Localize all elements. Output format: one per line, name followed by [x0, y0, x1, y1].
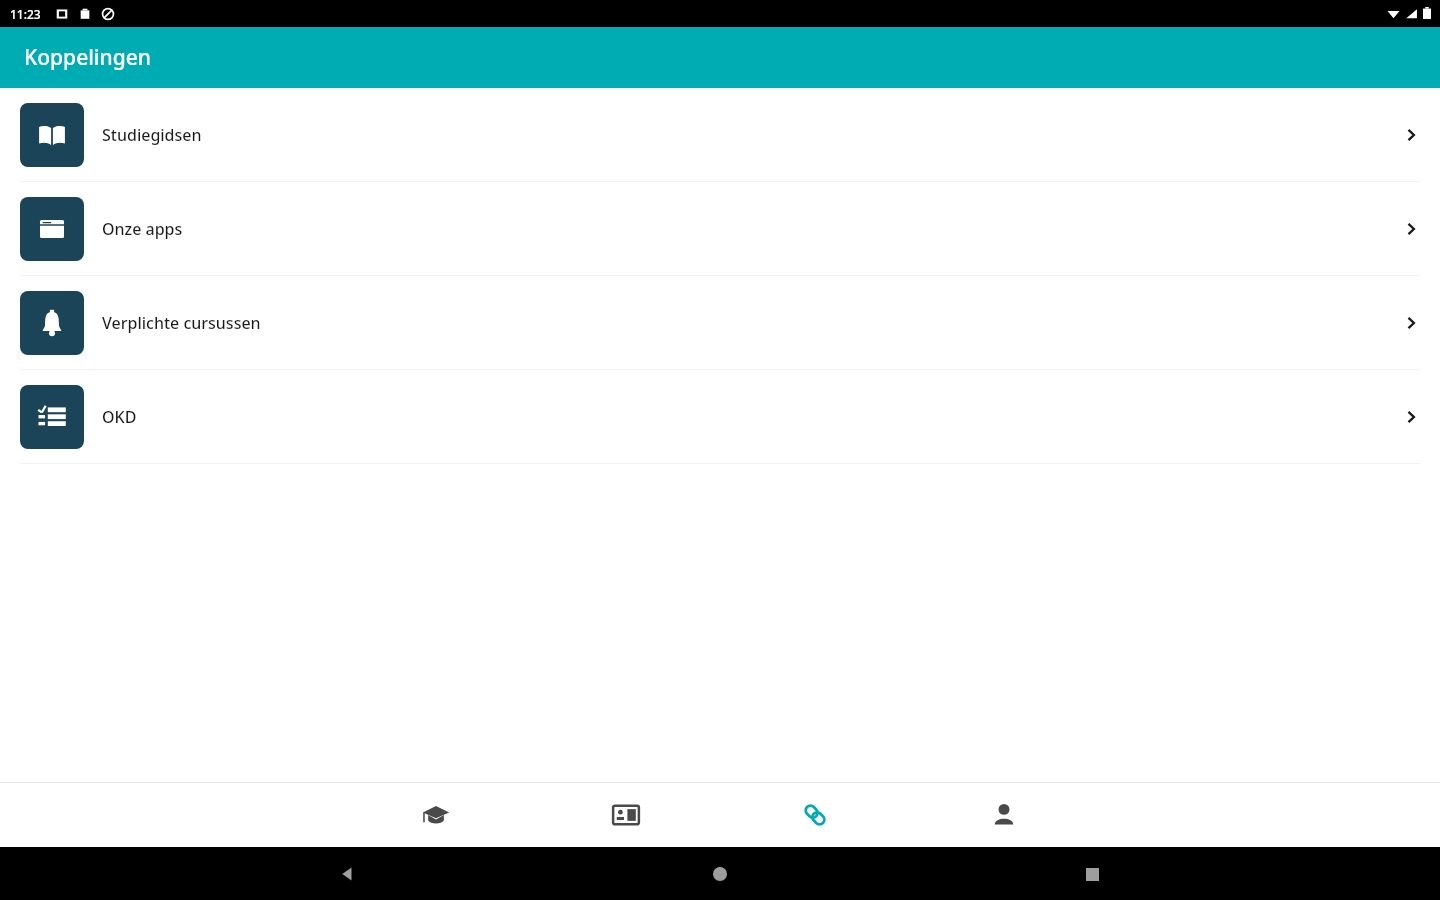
staticText: Verplichte cursussen: [102, 312, 261, 334]
button[interactable]: Profile: [964, 783, 1044, 847]
button[interactable]: Recent apps: [1068, 850, 1116, 898]
staticText: Onze apps: [102, 218, 183, 240]
staticText: OKD: [102, 406, 137, 428]
button[interactable]: Links: [775, 783, 855, 847]
button[interactable]: OKD: [0, 370, 1440, 463]
button[interactable]: Study: [396, 783, 476, 847]
button[interactable]: Onze apps: [0, 182, 1440, 275]
button[interactable]: Contacts: [586, 783, 666, 847]
staticText: Studiegidsen: [102, 124, 202, 146]
button[interactable]: Back: [324, 850, 372, 898]
staticText: Koppelingen: [24, 43, 151, 72]
button[interactable]: Home: [696, 850, 744, 898]
button[interactable]: Studiegidsen: [0, 88, 1440, 181]
staticText: 11:23: [10, 6, 41, 22]
button[interactable]: Verplichte cursussen: [0, 276, 1440, 369]
